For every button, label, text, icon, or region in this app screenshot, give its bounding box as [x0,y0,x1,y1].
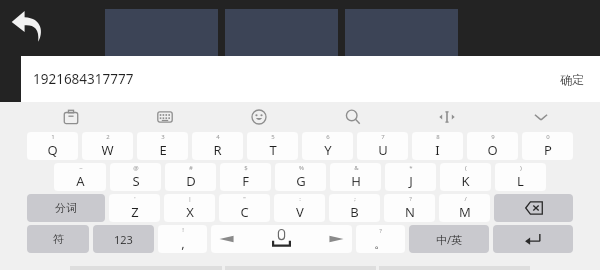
button[interactable]: 中/英 [409,225,489,253]
staticText: I [435,141,440,159]
button[interactable] [225,9,338,102]
staticText: C [240,203,249,221]
button[interactable]: 1921684317777 [21,56,544,102]
button[interactable]: Move cursor [400,102,494,132]
button[interactable]: ) [495,163,546,191]
staticText: Q [47,141,58,159]
button[interactable]: 4 [192,132,243,160]
button[interactable] [345,9,458,102]
button[interactable]: Backspace [494,194,573,222]
staticText: ! [182,226,184,234]
button[interactable]: 3 [137,132,188,160]
staticText: Y [324,141,332,159]
button[interactable]: " [219,194,270,222]
button[interactable]: * [385,163,436,191]
button[interactable]: ~ [54,163,106,191]
staticText: W [101,141,114,159]
staticText: E [159,141,167,159]
staticText: ( [465,164,467,172]
button[interactable]: 9 [467,132,518,160]
staticText: $ [244,164,248,172]
button[interactable]: Search [306,102,400,132]
staticText: U [378,141,388,159]
button[interactable]: 123 [93,225,154,253]
button[interactable]: 5 [247,132,298,160]
button[interactable]: @ [110,163,161,191]
button[interactable]: & [330,163,381,191]
button[interactable]: ( [440,163,491,191]
button[interactable]: 1 [27,132,78,160]
staticText: 。 [374,235,387,251]
staticText: A [76,172,85,190]
staticText: 0 [546,133,550,141]
staticText: 1 [51,133,55,141]
button[interactable]: 符 [27,225,89,253]
button[interactable]: Space / voice input [211,225,352,253]
staticText: @ [133,164,139,172]
staticText: F [242,172,249,190]
staticText: M [459,203,471,221]
staticText: O [487,141,498,159]
button[interactable]: Clipboard [24,102,118,132]
button[interactable] [105,9,218,102]
staticText: Z [131,203,139,221]
staticText: ) [520,164,522,172]
staticText: 确定 [560,72,584,87]
staticText: 8 [436,133,440,141]
button[interactable]: / [439,194,490,222]
button[interactable]: ' [109,194,160,222]
staticText: : [299,195,301,203]
staticText: V [296,203,304,221]
staticText: ; [354,195,356,203]
staticText: P [544,141,552,159]
staticText: & [354,164,359,172]
staticText: % [299,164,304,172]
staticText: ? [379,227,382,235]
staticText: H [351,172,361,190]
button[interactable]: ? [384,194,435,222]
staticText: 123 [114,232,133,247]
staticText: ~ [79,164,83,172]
staticText: 4 [216,133,220,141]
button[interactable]: 0 [522,132,573,160]
staticText: 2 [106,133,110,141]
button[interactable]: Hide keyboard [494,102,588,132]
button[interactable]: Emoji [212,102,306,132]
staticText: " [243,195,246,203]
button[interactable]: 2 [82,132,133,160]
button[interactable]: | [164,194,215,222]
button[interactable]: # [165,163,216,191]
staticText: B [350,203,359,221]
button[interactable]: Keyboard [118,102,212,132]
button[interactable]: 8 [412,132,463,160]
staticText: 符 [53,232,64,246]
staticText: * [409,164,413,172]
staticText: L [517,172,524,190]
staticText: 1921684317777 [33,70,134,88]
staticText: ? [409,195,412,203]
button[interactable]: 7 [357,132,408,160]
button[interactable]: % [275,163,326,191]
staticText: 7 [381,133,385,141]
button[interactable]: 6 [302,132,353,160]
staticText: S [132,172,140,190]
button[interactable]: 分词 [27,194,105,222]
staticText: | [188,195,192,203]
staticText: / [464,195,467,203]
button[interactable]: ! [158,225,207,253]
staticText: X [186,203,194,221]
staticText: # [189,164,193,172]
button[interactable]: 确定 [544,56,600,102]
button[interactable]: Enter [493,225,573,253]
staticText: 分词 [55,201,77,215]
staticText: T [269,141,277,159]
staticText: 中/英 [436,232,463,247]
button[interactable]: $ [220,163,271,191]
button[interactable]: ? [356,225,405,253]
button[interactable]: Back [6,4,50,48]
staticText: J [409,172,413,190]
button[interactable]: : [274,194,325,222]
staticText: 3 [161,133,165,141]
button[interactable]: ; [329,194,380,222]
staticText: , [181,234,185,252]
